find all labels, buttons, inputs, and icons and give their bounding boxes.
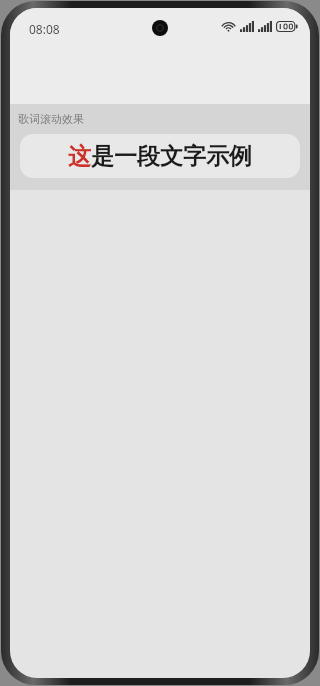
staticText: 08:08: [29, 21, 60, 37]
staticText: 这是一段文字示例: [68, 142, 252, 171]
staticText: 歌词滚动效果: [18, 112, 84, 126]
button[interactable]: 这是一段文字示例: [20, 134, 300, 178]
